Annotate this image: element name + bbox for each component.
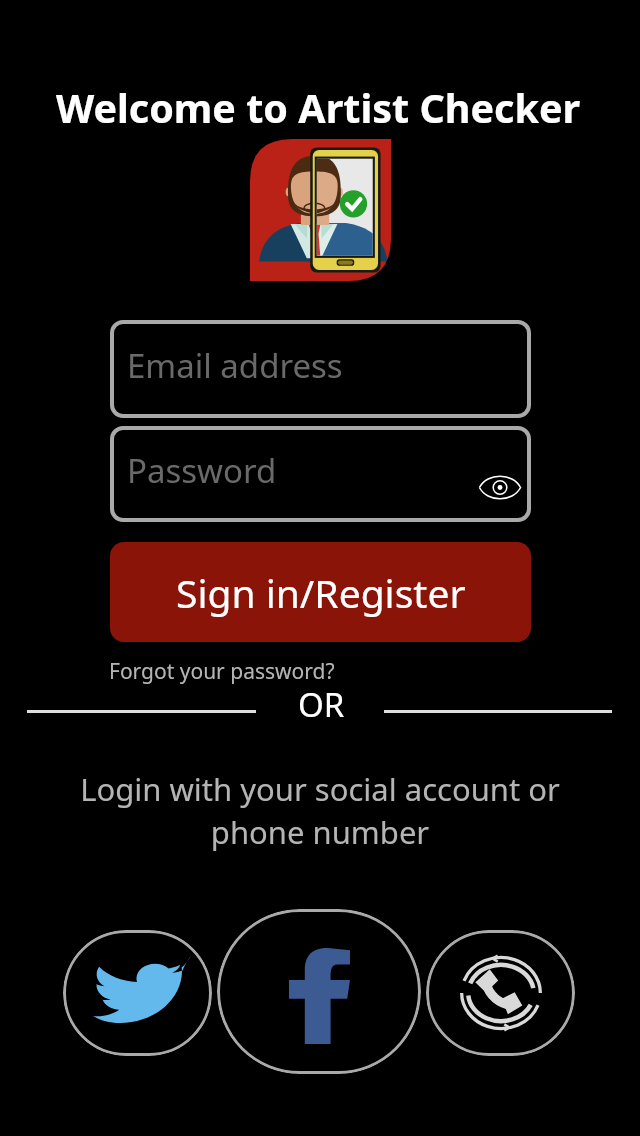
button[interactable]: Email address <box>110 320 531 418</box>
button[interactable]: Sign in with Facebook <box>217 909 421 1074</box>
button[interactable]: Sign in with phone number <box>426 930 575 1056</box>
button[interactable]: Forgot your password? <box>109 657 335 686</box>
button[interactable]: Sign in/Register <box>110 542 531 642</box>
staticText: Sign in/Register <box>176 566 466 619</box>
staticText: Email address <box>127 343 343 388</box>
button[interactable]: Password <box>110 426 531 522</box>
staticText: OR <box>298 682 345 727</box>
staticText: Welcome to Artist Checker <box>56 81 581 135</box>
staticText: Login with your social account or phone … <box>70 768 570 853</box>
staticText: Password <box>127 448 277 493</box>
button[interactable]: Sign in with Twitter <box>63 930 212 1056</box>
button[interactable]: Show password <box>476 467 524 507</box>
